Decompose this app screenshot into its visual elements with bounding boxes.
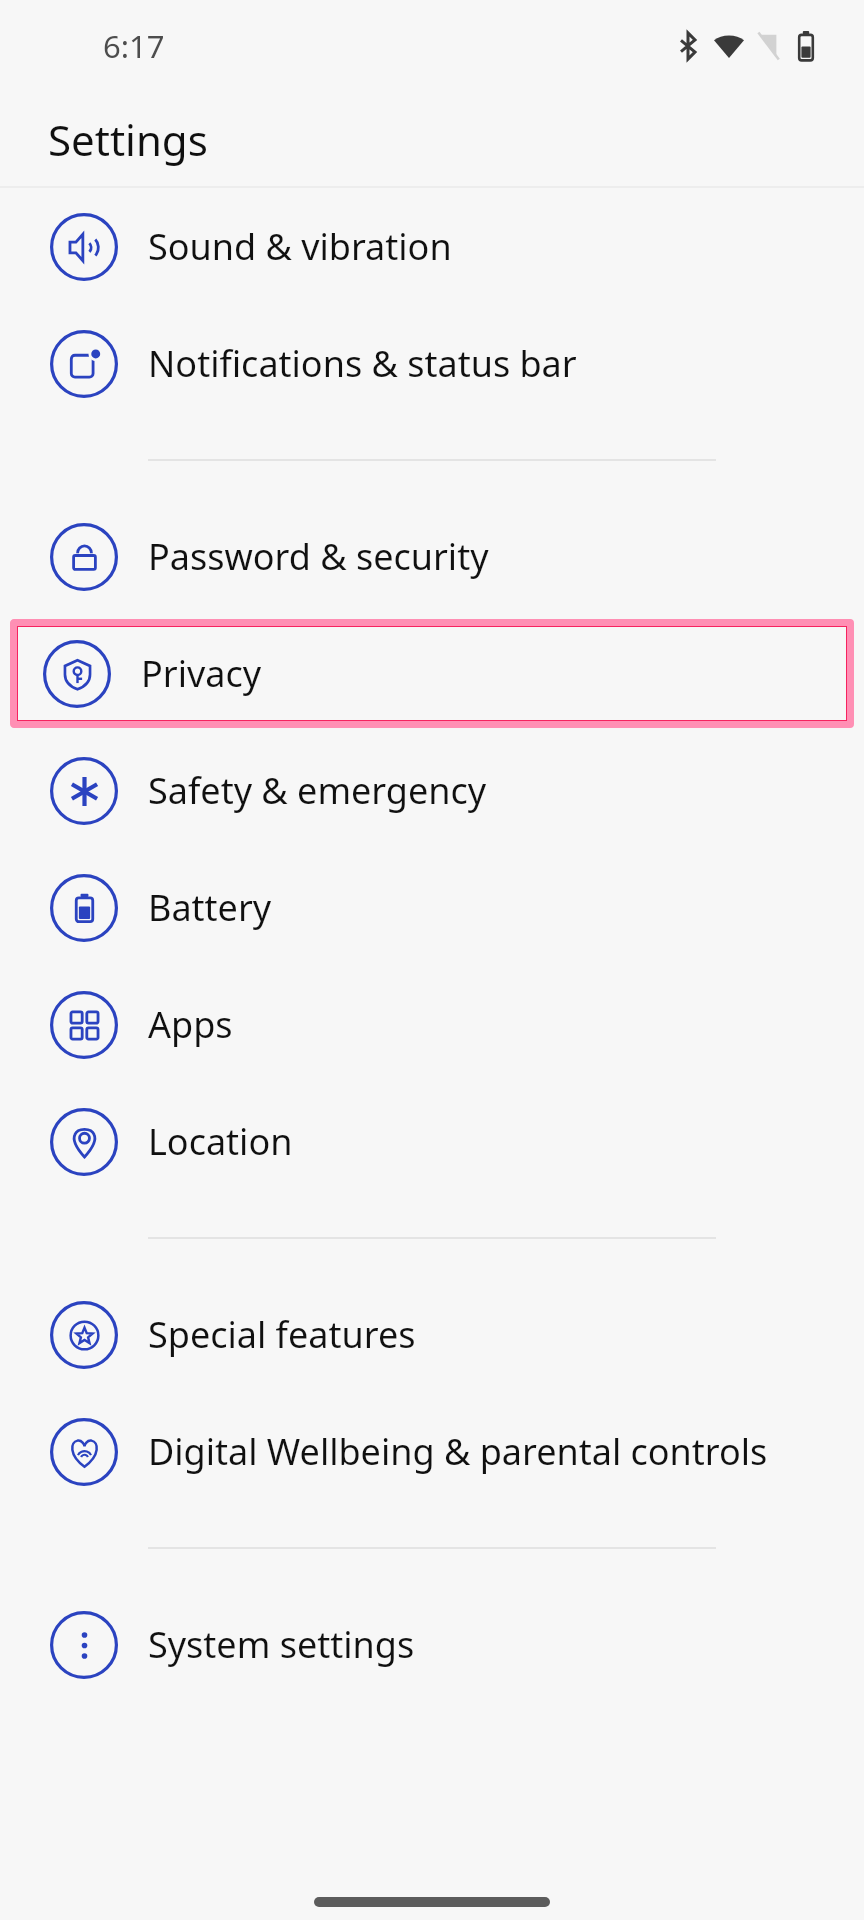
button[interactable]: Apps	[0, 966, 864, 1083]
staticText: Location	[148, 1117, 293, 1166]
button[interactable]: Notifications & status bar	[0, 305, 864, 422]
staticText: Sound & vibration	[148, 222, 452, 271]
staticText: Password & security	[148, 532, 489, 581]
button[interactable]: Password & security	[0, 498, 864, 615]
staticText: Digital Wellbeing & parental controls	[148, 1427, 768, 1476]
staticText: Notifications & status bar	[148, 339, 577, 388]
other: Home gesture bar	[314, 1897, 550, 1907]
staticText: Settings	[48, 111, 208, 168]
staticText: Special features	[148, 1310, 416, 1359]
button[interactable]: Safety & emergency	[0, 732, 864, 849]
staticText: Battery	[148, 883, 272, 932]
staticText: Privacy	[141, 649, 262, 698]
staticText: Safety & emergency	[148, 766, 487, 815]
button[interactable]: Location	[0, 1083, 864, 1200]
staticText: Apps	[148, 1000, 233, 1049]
button[interactable]: Special features	[0, 1276, 864, 1393]
button[interactable]: Privacy	[14, 623, 850, 724]
button[interactable]: System settings	[0, 1586, 864, 1703]
staticText: 6:17	[103, 25, 165, 67]
button[interactable]: Sound & vibration	[0, 188, 864, 305]
button[interactable]: Battery	[0, 849, 864, 966]
staticText: System settings	[148, 1620, 415, 1669]
button[interactable]: Digital Wellbeing & parental controls	[0, 1393, 864, 1510]
